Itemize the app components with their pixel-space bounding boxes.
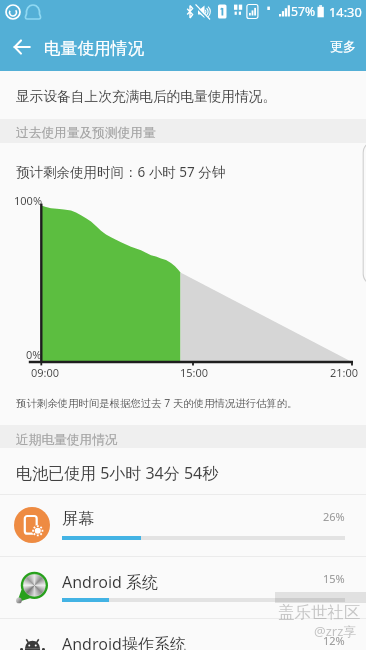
staticText: 近期电量使用情况 [16, 432, 118, 448]
staticText: 57% [291, 3, 316, 20]
staticText: 21:00 [330, 365, 359, 380]
staticText: 0% [26, 347, 42, 362]
button[interactable]: 更多 [318, 24, 366, 71]
staticText: 09:00 [31, 365, 60, 380]
staticText: 14:30 [329, 3, 362, 20]
staticText: 盖乐世社区 [278, 602, 361, 623]
staticText: 100% [14, 193, 43, 208]
staticText: 电池已使用 5小时 34分 54秒 [16, 462, 219, 484]
staticText: 15:00 [180, 365, 209, 380]
staticText: Android 系统 [62, 571, 159, 593]
staticText: 12% [323, 633, 345, 648]
staticText: 15% [323, 571, 345, 586]
staticText: 电量使用情况 [44, 38, 145, 59]
button[interactable]: 屏幕 [0, 495, 366, 556]
staticText: @zrz享 [314, 622, 357, 640]
staticText: 预计剩余使用时间：6 小时 57 分钟 [16, 163, 226, 181]
staticText: Android操作系统 [62, 633, 186, 650]
staticText: 屏幕 [62, 509, 94, 529]
staticText: 过去使用量及预测使用量 [16, 125, 156, 141]
staticText: 预计剩余使用时间是根据您过去 7 天的使用情况进行估算的。 [16, 396, 298, 410]
button[interactable]: Back [4, 29, 40, 65]
button[interactable]: Android操作系统 [0, 619, 366, 650]
staticText: 26% [323, 509, 345, 524]
button[interactable]: Android 系统 [0, 557, 366, 618]
staticText: 显示设备自上次充满电后的电量使用情况。 [16, 88, 277, 105]
staticText: 更多 [330, 38, 356, 54]
